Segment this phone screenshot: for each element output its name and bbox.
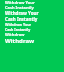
staticText: Cash Instantly [5, 16, 38, 22]
staticText: Withdraw Your [5, 10, 39, 16]
staticText: Cash Instantly [5, 27, 31, 32]
staticText: Withdraw [5, 37, 35, 45]
staticText: Cash Instantly [5, 5, 34, 10]
staticText: Withdraw [5, 32, 25, 37]
staticText: Withdraw Your [5, 0, 35, 5]
staticText: Withdraw Your [5, 22, 31, 27]
